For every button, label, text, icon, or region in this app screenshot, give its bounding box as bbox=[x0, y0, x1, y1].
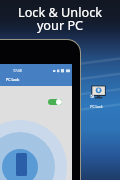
button[interactable]: PC Lock desktop shortcut bbox=[88, 83, 108, 109]
staticText: 17:38 bbox=[13, 68, 22, 73]
staticText: Lock & Unlock your PC bbox=[0, 3, 120, 33]
button[interactable]: Lock toggle bbox=[48, 99, 62, 105]
staticText: PC Lock bbox=[6, 77, 20, 82]
staticText: PC Lock bbox=[90, 104, 103, 109]
